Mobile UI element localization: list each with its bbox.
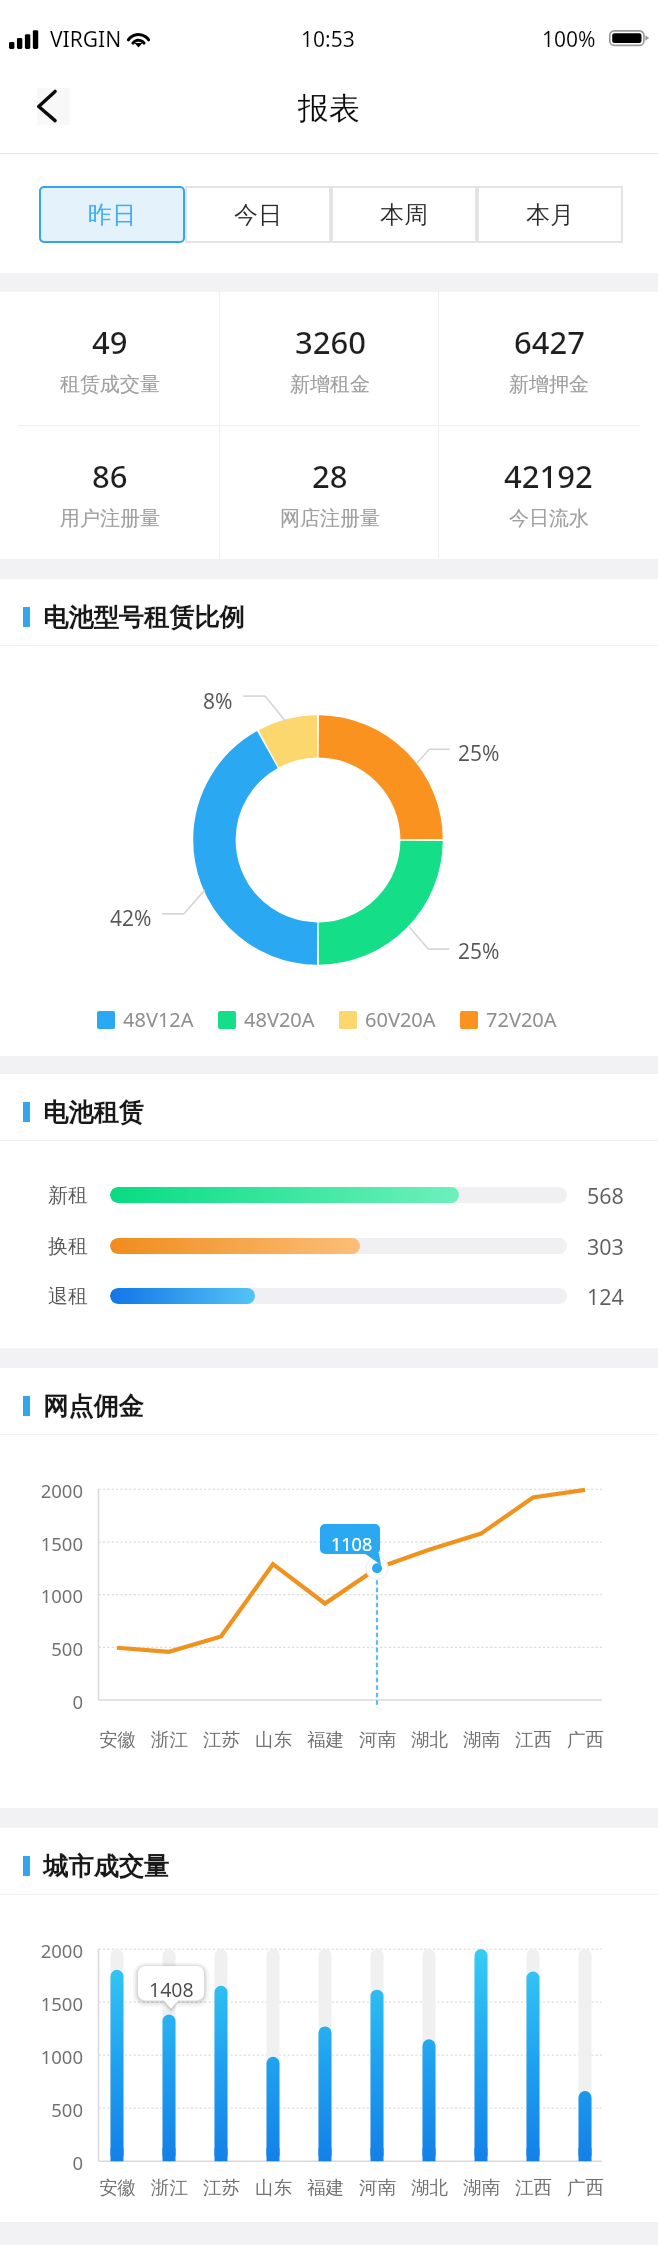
staticText: 28 — [312, 455, 348, 497]
staticText: 48V20A — [244, 1006, 315, 1033]
staticText: 48V12A — [123, 1006, 194, 1033]
staticText: 500 — [20, 1636, 83, 1661]
staticText: 广西 — [567, 2176, 604, 2199]
staticText: 86 — [92, 455, 128, 497]
staticText: 2000 — [20, 1938, 83, 1963]
staticText: 江西 — [515, 1728, 552, 1751]
staticText: 湖南 — [463, 2176, 500, 2199]
staticText: 1500 — [20, 1991, 83, 2016]
staticText: 江苏 — [203, 2176, 240, 2199]
staticText: 1108 — [331, 1532, 373, 1557]
staticText: 0 — [20, 2150, 83, 2175]
staticText: 河南 — [359, 2176, 396, 2199]
staticText: 山东 — [255, 2176, 292, 2199]
staticText: 浙江 — [151, 2176, 188, 2199]
button[interactable]: 本月 — [477, 186, 623, 243]
staticText: 电池租赁 — [43, 1097, 144, 1129]
staticText: 500 — [20, 2097, 83, 2122]
staticText: 新增押金 — [509, 372, 589, 397]
staticText: 换租 — [48, 1234, 88, 1259]
staticText: 8% — [203, 687, 233, 716]
staticText: 新租 — [48, 1183, 88, 1208]
staticText: 25% — [458, 937, 500, 966]
staticText: 124 — [587, 1282, 642, 1311]
staticText: 广西 — [567, 1728, 604, 1751]
staticText: 电池型号租赁比例 — [43, 602, 245, 634]
staticText: 湖南 — [463, 1728, 500, 1751]
staticText: 1000 — [20, 1583, 83, 1608]
staticText: 报表 — [298, 89, 360, 128]
staticText: VIRGIN — [50, 25, 122, 54]
staticText: 0 — [20, 1689, 83, 1714]
staticText: 60V20A — [365, 1006, 436, 1033]
staticText: 用户注册量 — [60, 506, 160, 531]
staticText: 25% — [458, 739, 500, 768]
staticText: 浙江 — [151, 1728, 188, 1751]
button[interactable]: Back — [37, 88, 70, 125]
staticText: 网店注册量 — [280, 506, 380, 531]
staticText: 今日 — [234, 200, 282, 230]
staticText: 租赁成交量 — [60, 372, 160, 397]
staticText: 城市成交量 — [43, 1851, 169, 1883]
button[interactable]: 昨日 — [39, 186, 185, 243]
button[interactable]: 本周 — [331, 186, 477, 243]
button[interactable]: 今日 — [185, 186, 331, 243]
staticText: 江苏 — [203, 1728, 240, 1751]
staticText: 1500 — [20, 1531, 83, 1556]
staticText: 山东 — [255, 1728, 292, 1751]
staticText: 新增租金 — [290, 372, 370, 397]
staticText: 49 — [92, 321, 128, 363]
staticText: 昨日 — [88, 200, 136, 230]
staticText: 568 — [587, 1181, 642, 1210]
staticText: 6427 — [514, 321, 585, 363]
staticText: 3260 — [295, 321, 366, 363]
staticText: 1408 — [149, 1976, 194, 2003]
staticText: 42% — [110, 904, 152, 933]
staticText: 本周 — [380, 200, 428, 230]
staticText: 10:53 — [301, 25, 355, 54]
staticText: 湖北 — [411, 1728, 448, 1751]
staticText: 1000 — [20, 2044, 83, 2069]
staticText: 湖北 — [411, 2176, 448, 2199]
staticText: 42192 — [504, 455, 593, 497]
staticText: 网点佣金 — [43, 1391, 144, 1423]
staticText: 2000 — [20, 1478, 83, 1503]
staticText: 本月 — [526, 200, 574, 230]
staticText: 福建 — [307, 1728, 344, 1751]
staticText: 100% — [542, 25, 596, 54]
staticText: 福建 — [307, 2176, 344, 2199]
staticText: 303 — [587, 1232, 642, 1261]
staticText: 江西 — [515, 2176, 552, 2199]
staticText: 72V20A — [486, 1006, 557, 1033]
staticText: 安徽 — [99, 1728, 136, 1751]
staticText: 今日流水 — [509, 506, 589, 531]
staticText: 安徽 — [99, 2176, 136, 2199]
staticText: 河南 — [359, 1728, 396, 1751]
staticText: 退租 — [48, 1284, 88, 1309]
